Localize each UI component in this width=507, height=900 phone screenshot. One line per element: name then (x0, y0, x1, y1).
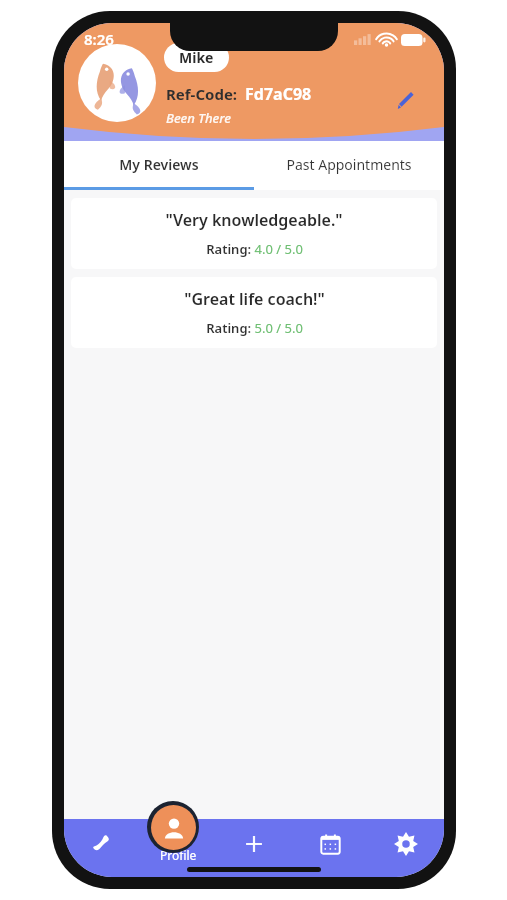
staticText: Rating: 4.0 / 5.0 (206, 240, 303, 258)
staticText: 8:26 (84, 29, 114, 49)
staticText: Ref-Code: (166, 84, 238, 104)
button[interactable]: Profile (147, 801, 199, 853)
button[interactable]: Profile photo (78, 44, 156, 122)
button[interactable]: Add (216, 819, 292, 877)
staticText: "Great life coach!" (184, 288, 325, 310)
staticText: Profile (160, 847, 197, 863)
staticText: Been There (166, 109, 231, 127)
button[interactable]: Call (64, 819, 140, 877)
button[interactable]: "Very knowledgeable." (71, 198, 437, 269)
staticText: Fd7aC98 (245, 83, 312, 105)
button[interactable]: Settings (368, 819, 444, 877)
button[interactable]: Profile (140, 819, 216, 877)
button[interactable]: Past Appointments (254, 141, 444, 187)
staticText: My Reviews (119, 155, 199, 174)
button[interactable]: My Reviews (64, 141, 254, 187)
staticText: Past Appointments (286, 155, 412, 174)
staticText: "Very knowledgeable." (165, 209, 343, 231)
staticText: Rating: 5.0 / 5.0 (206, 319, 303, 337)
button[interactable]: "Great life coach!" (71, 277, 437, 348)
button[interactable]: Appointments (292, 819, 368, 877)
button[interactable]: Mike (164, 43, 229, 72)
button[interactable]: Edit profile (388, 83, 422, 117)
staticText: Mike (179, 48, 214, 67)
